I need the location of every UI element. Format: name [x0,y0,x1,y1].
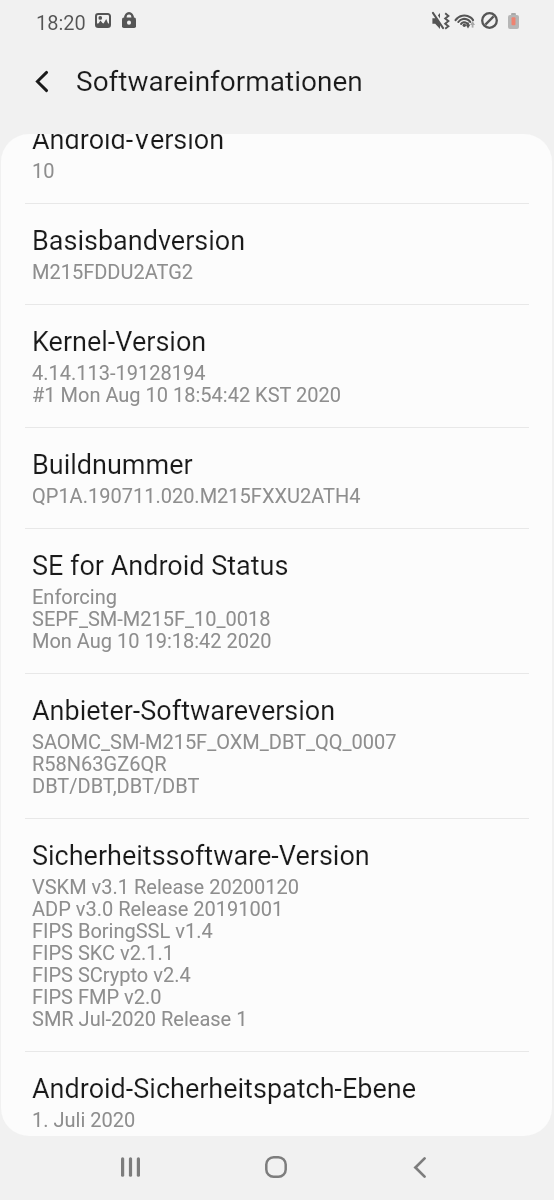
staticText: Buildnummer [32,449,193,481]
staticText: SAOMC_SM-M215F_OXM_DBT_QQ_0007 [32,731,397,753]
staticText: FIPS BoringSSL v1.4 [32,920,213,942]
staticText: Mon Aug 10 19:18:42 2020 [32,630,272,652]
staticText: FIPS SKC v2.1.1 [32,942,175,964]
button[interactable]: Buildnummer [1,427,552,528]
staticText: Enforcing [32,586,117,608]
staticText: R58N63GZ6QR [32,753,167,775]
staticText: 18:20 [36,11,86,34]
button[interactable]: Recent apps [82,1142,178,1192]
button[interactable]: Sicherheitssoftware-Version [1,818,552,1051]
staticText: M215FDDU2ATG2 [32,261,194,283]
staticText: Android-Version [32,134,225,156]
staticText: Android-Sicherheitspatch-Ebene [32,1073,417,1105]
button[interactable]: Back [372,1142,468,1192]
button[interactable]: Back [4,49,80,114]
staticText: 1. Juli 2020 [32,1109,136,1131]
staticText: QP1A.190711.020.M215FXXU2ATH4 [32,485,361,507]
staticText: 4.14.113-19128194 [32,362,206,384]
button[interactable]: SE for Android Status [1,528,552,673]
staticText: 10 [32,160,55,182]
staticText: Kernel-Version [32,326,207,358]
button[interactable]: Kernel-Version [1,304,552,427]
staticText: VSKM v3.1 Release 20200120 [32,876,300,898]
staticText: FIPS FMP v2.0 [32,986,162,1008]
staticText: FIPS SCrypto v2.4 [32,964,191,986]
staticText: SE for Android Status [32,550,289,582]
button[interactable]: Home [228,1142,324,1192]
button[interactable]: Android-Sicherheitspatch-Ebene [1,1051,552,1136]
staticText: ADP v3.0 Release 20191001 [32,898,284,920]
staticText: #1 Mon Aug 10 18:54:42 KST 2020 [32,384,341,406]
staticText: Basisbandversion [32,225,246,257]
staticText: SEPF_SM-M215F_10_0018 [32,608,271,630]
staticText: Softwareinformationen [76,65,363,98]
button[interactable]: Anbieter-Softwareversion [1,673,552,818]
staticText: Anbieter-Softwareversion [32,695,336,727]
staticText: Sicherheitssoftware-Version [32,840,370,872]
staticText: DBT/DBT,DBT/DBT [32,775,200,797]
button[interactable]: Basisbandversion [1,203,552,304]
staticText: SMR Jul-2020 Release 1 [32,1008,248,1030]
button[interactable]: Android-Version [1,134,552,203]
